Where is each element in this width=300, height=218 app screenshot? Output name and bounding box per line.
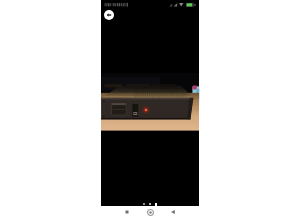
button[interactable]: Photo — [101, 73, 199, 130]
button[interactable]: Back — [170, 209, 176, 215]
button[interactable]: Back — [104, 10, 114, 20]
button[interactable]: Recent apps — [124, 209, 130, 215]
button[interactable]: Home — [147, 209, 154, 216]
